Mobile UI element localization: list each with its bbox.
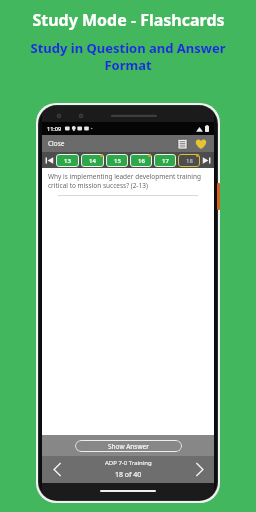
staticText: ADP 7-0 Training (105, 459, 152, 467)
staticText: Why is implementing leader development t… (48, 172, 208, 190)
button[interactable]: Next card (184, 456, 214, 483)
button[interactable]: Last card (201, 156, 212, 165)
button[interactable]: 16 (130, 154, 152, 167)
button[interactable]: Previous card (42, 456, 72, 483)
staticText: 18 (186, 157, 193, 165)
button[interactable]: First card (44, 156, 55, 165)
button[interactable]: Favorite (193, 136, 209, 151)
staticText: 11:09 (47, 125, 62, 132)
button[interactable]: Notes (176, 136, 189, 151)
staticText: Study in Question and Answer Format (30, 39, 226, 74)
staticText: 17 (162, 157, 169, 165)
staticText: Close (48, 139, 65, 148)
button[interactable]: 14 (81, 154, 104, 167)
staticText: 18 of 40 (115, 470, 142, 480)
staticText: Show Answer (108, 442, 149, 451)
button[interactable]: Show Answer (75, 440, 182, 452)
staticText: 15 (114, 157, 121, 165)
staticText: 16 (138, 157, 145, 165)
button[interactable]: 18 (178, 154, 200, 167)
button[interactable]: 15 (106, 154, 128, 167)
staticText: 14 (89, 157, 96, 165)
button[interactable]: 13 (56, 154, 79, 167)
staticText: 13 (64, 157, 71, 165)
staticText: Study Mode - Flashcards (32, 9, 225, 31)
button[interactable]: Close (42, 136, 71, 151)
button[interactable]: 17 (154, 154, 176, 167)
